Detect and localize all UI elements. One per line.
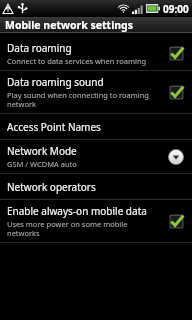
staticText: Access Point Names	[7, 120, 101, 134]
staticText: 09:00	[163, 2, 189, 16]
staticText: Data roaming	[7, 41, 72, 55]
staticText: Data roaming sound	[7, 75, 104, 89]
staticText: Network operators	[7, 180, 96, 194]
staticText: Network Mode	[7, 144, 77, 158]
staticText: Play sound when connecting to roaming ne…	[7, 90, 162, 109]
button[interactable]: Data roaming sound	[0, 71, 192, 113]
button[interactable]: Toggle checkbox	[168, 84, 185, 101]
button[interactable]: Toggle checkbox	[168, 45, 185, 62]
staticText: GSM / WCDMA auto	[7, 159, 77, 169]
button[interactable]: Network Mode	[0, 140, 192, 173]
button[interactable]: Toggle checkbox	[168, 213, 185, 230]
staticText: Uses more power on some mobile networks	[7, 219, 162, 238]
button[interactable]: Enable always-on mobile data	[0, 200, 192, 242]
button[interactable]: Access Point Names	[0, 114, 192, 139]
staticText: Mobile network settings	[5, 18, 134, 32]
button[interactable]: Data roaming	[0, 37, 192, 70]
button[interactable]: Network operators	[0, 174, 192, 199]
button[interactable]: Open network mode options	[167, 148, 185, 166]
staticText: Connect to data services when roaming	[7, 56, 147, 66]
staticText: Enable always-on mobile data	[7, 204, 147, 218]
